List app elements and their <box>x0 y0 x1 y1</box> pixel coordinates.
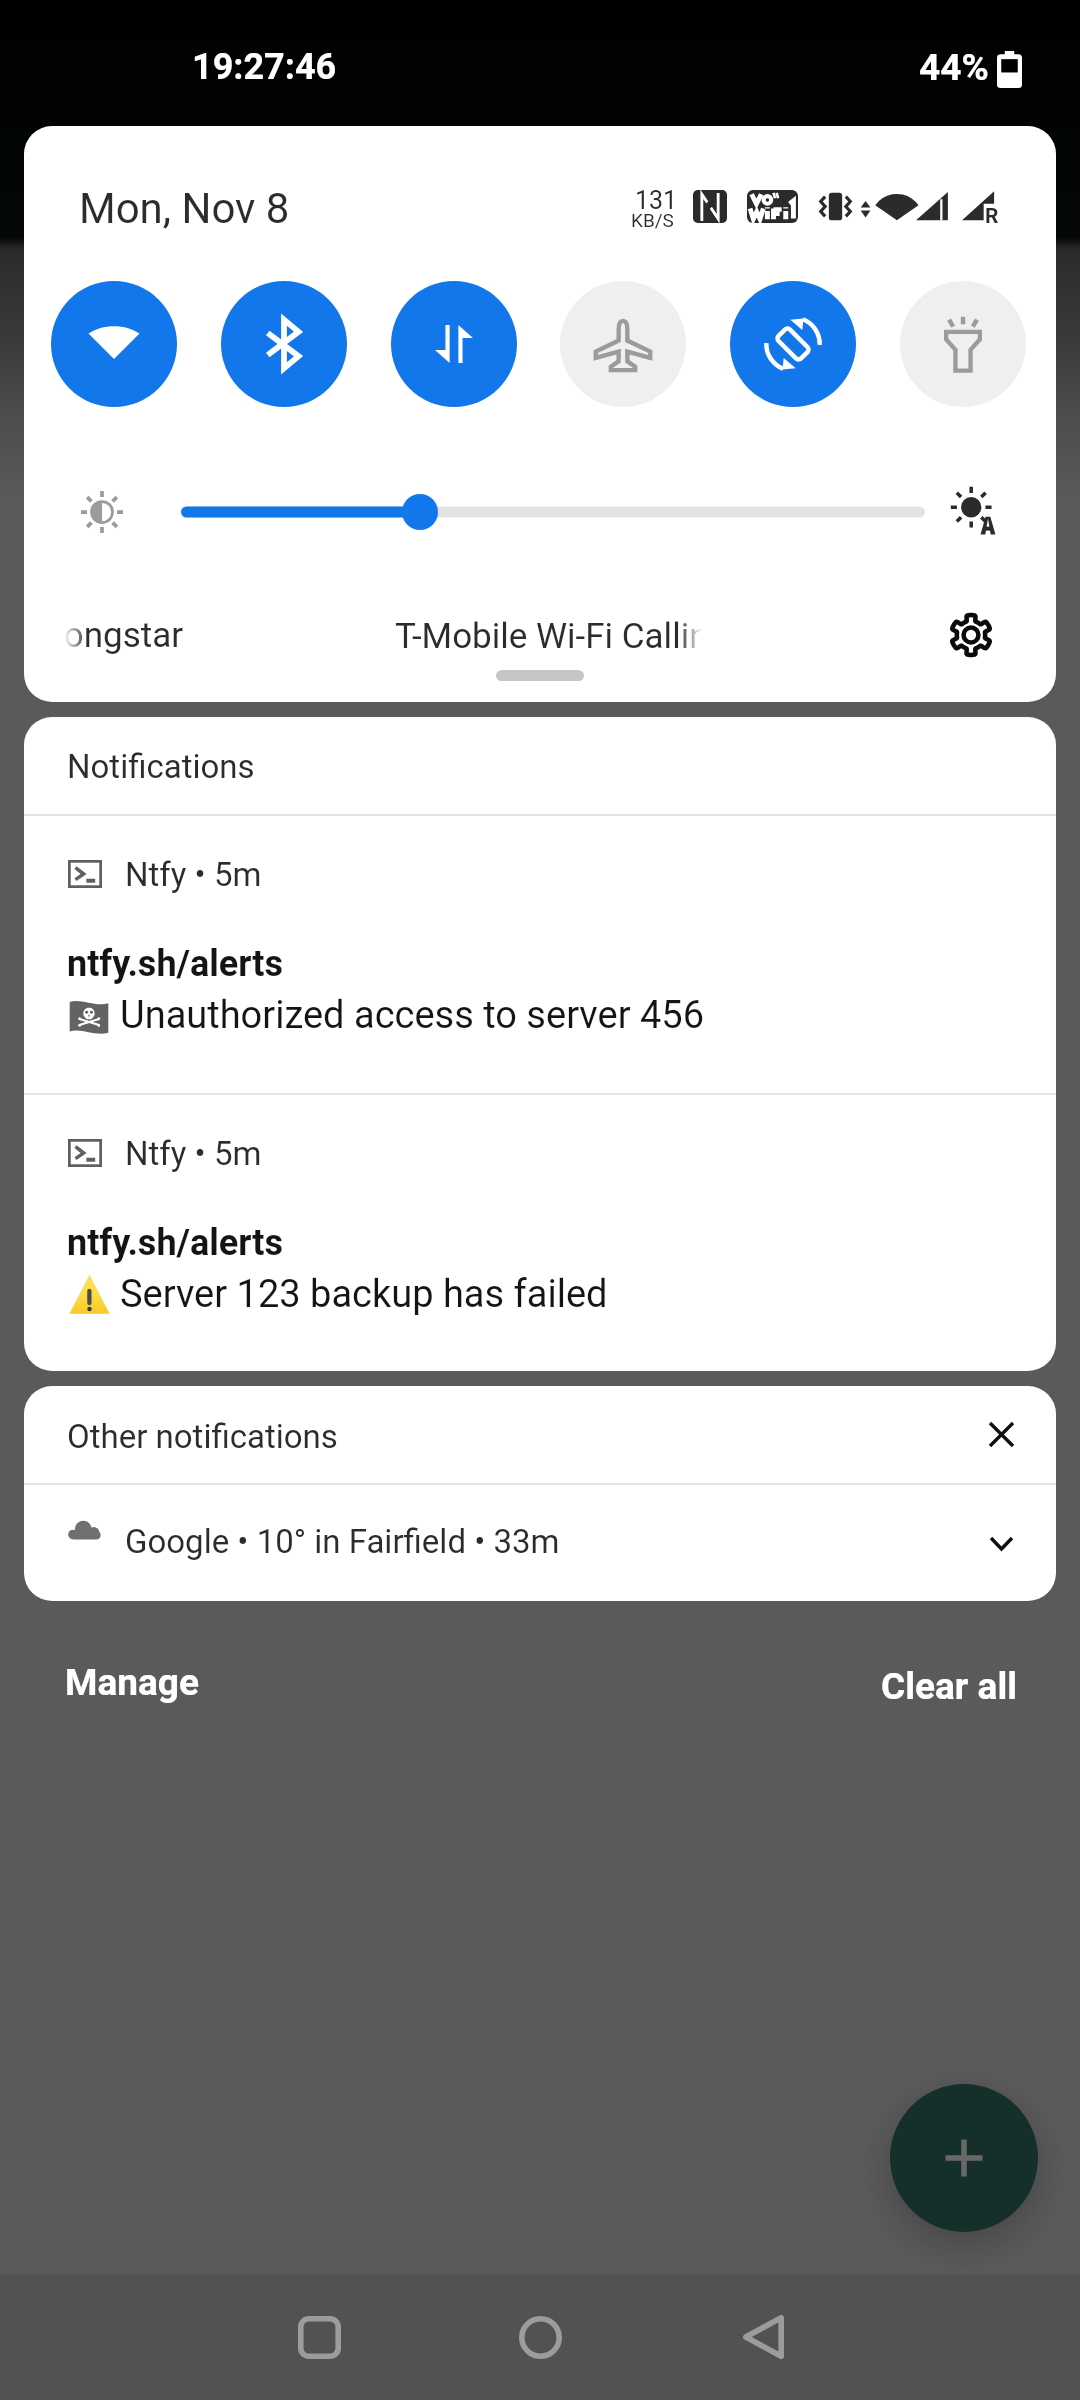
staticText: KB/S <box>631 209 674 231</box>
button[interactable]: Clear all <box>861 1649 1038 1724</box>
staticText: Clear all <box>881 1665 1018 1708</box>
staticText: 131 <box>635 186 678 215</box>
staticText: ntfy.sh/alerts <box>67 943 284 985</box>
button[interactable]: Airplane mode <box>560 281 686 407</box>
button[interactable]: Google • 10° in Fairfield • 33m <box>24 1484 1056 1601</box>
button[interactable]: Mobile data <box>391 281 517 407</box>
staticText: Manage <box>65 1661 199 1704</box>
staticText: R <box>985 204 999 229</box>
button[interactable]: Wi-Fi <box>51 281 177 407</box>
button[interactable]: Ntfy • 5m <box>24 1094 1056 1371</box>
staticText: 19:27:46 <box>192 46 337 88</box>
staticText: T-Mobile Wi-Fi Calling <box>395 616 702 657</box>
staticText: 44% <box>919 46 989 89</box>
staticText: ntfy.sh/alerts <box>67 1222 284 1264</box>
button[interactable]: Bluetooth <box>221 281 347 407</box>
button[interactable]: Flashlight <box>900 281 1026 407</box>
staticText: Ntfy • 5m <box>125 1134 262 1173</box>
other: Expand <box>970 1512 1032 1574</box>
button[interactable]: Add <box>890 2084 1038 2232</box>
staticText: Notifications <box>67 747 255 786</box>
staticText: Unauthorized access to server 456 <box>120 993 705 1038</box>
staticText: Server 123 backup has failed <box>120 1272 608 1317</box>
staticText: Bongstar <box>64 615 184 656</box>
button[interactable]: Back <box>693 2274 833 2400</box>
button[interactable]: Manage <box>45 1645 219 1720</box>
button[interactable]: Home <box>470 2274 610 2400</box>
button[interactable]: Settings <box>937 601 1005 669</box>
button[interactable]: Auto rotate <box>730 281 856 407</box>
button[interactable]: Ntfy • 5m <box>24 815 1056 1093</box>
staticText: Google • 10° in Fairfield • 33m <box>125 1522 560 1561</box>
staticText: Other notifications <box>67 1417 338 1456</box>
button[interactable]: Dismiss <box>970 1403 1032 1465</box>
button[interactable]: Recents <box>249 2274 389 2400</box>
staticText: Ntfy • 5m <box>125 855 262 894</box>
staticText: Mon, Nov 8 <box>79 184 290 233</box>
